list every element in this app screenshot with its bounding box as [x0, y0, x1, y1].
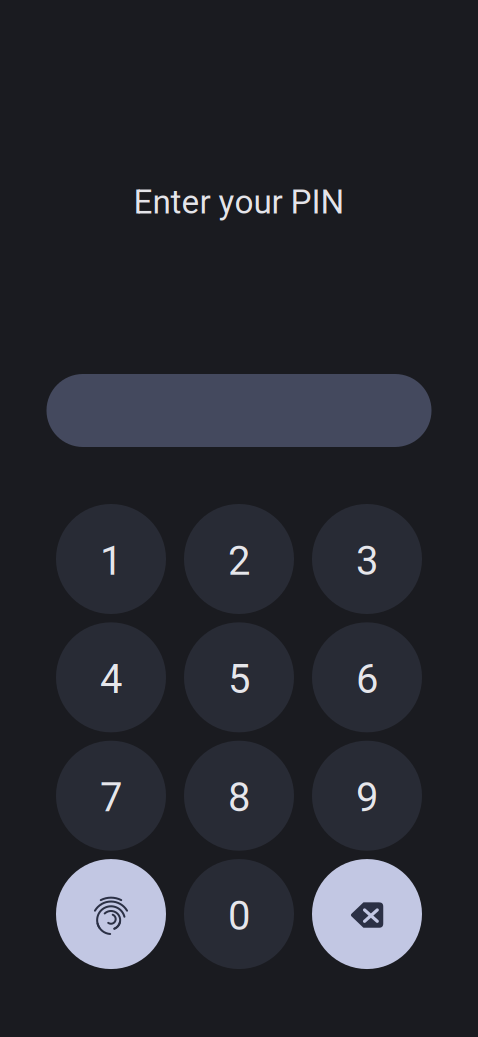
- staticText: 6: [356, 656, 378, 703]
- button[interactable]: 6: [312, 622, 422, 732]
- staticText: 9: [356, 774, 378, 821]
- button[interactable]: Delete: [312, 859, 422, 969]
- staticText: 2: [228, 538, 250, 584]
- button[interactable]: 3: [312, 504, 422, 614]
- button[interactable]: 4: [56, 622, 166, 732]
- button[interactable]: 0: [184, 859, 294, 969]
- button[interactable]: 9: [312, 741, 422, 851]
- staticText: 4: [100, 656, 122, 703]
- staticText: 3: [356, 538, 378, 584]
- staticText: 1: [100, 538, 122, 584]
- staticText: 5: [228, 656, 250, 703]
- button[interactable]: 7: [56, 741, 166, 851]
- button[interactable]: 1: [56, 504, 166, 614]
- button[interactable]: 8: [184, 741, 294, 851]
- button[interactable]: 2: [184, 504, 294, 614]
- button[interactable]: Unlock with fingerprint: [56, 859, 166, 969]
- staticText: Enter your PIN: [133, 182, 344, 222]
- staticText: 0: [228, 893, 250, 939]
- staticText: 8: [228, 774, 250, 821]
- staticText: 7: [100, 774, 122, 821]
- button[interactable]: 5: [184, 622, 294, 732]
